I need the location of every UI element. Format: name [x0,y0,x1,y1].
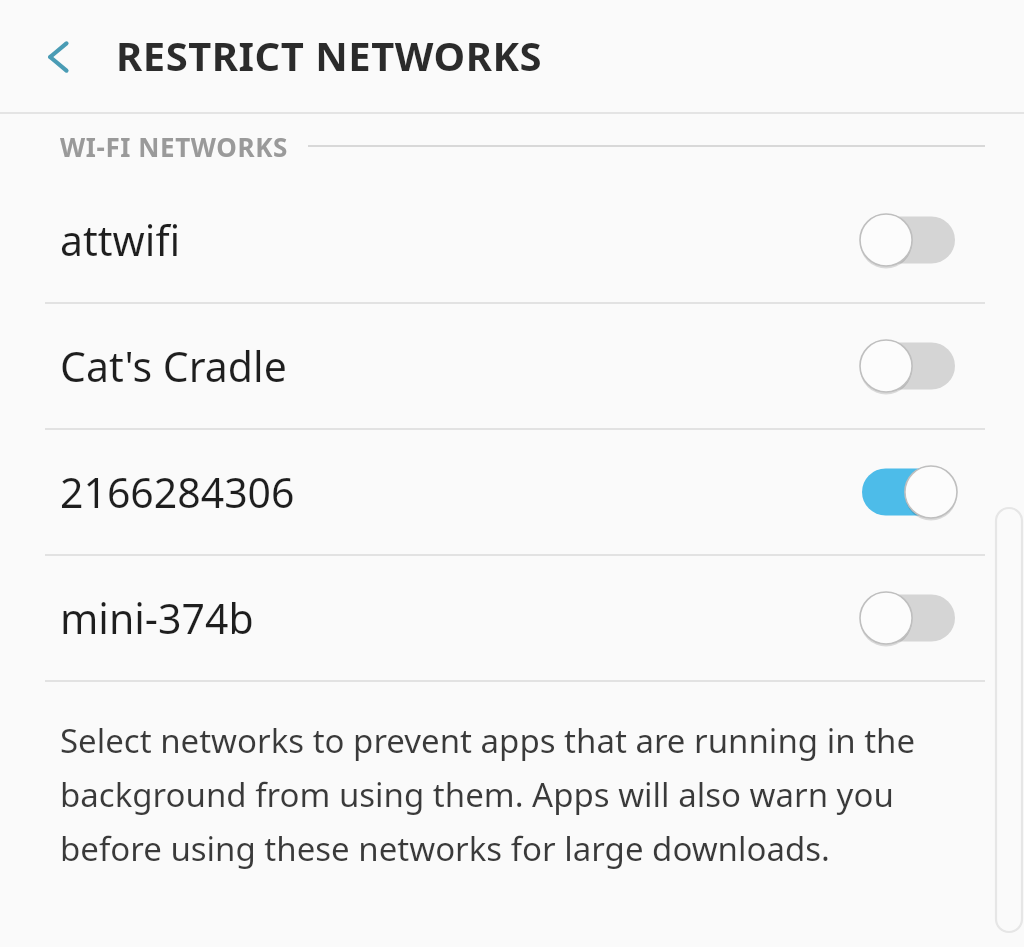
staticText: mini-374b [60,590,862,646]
staticText: Cat's Cradle [60,338,862,394]
button[interactable]: Cat's Cradle [0,304,1024,428]
staticText: RESTRICT NETWORKS [116,28,542,82]
button[interactable]: mini-374b [0,556,1024,680]
button[interactable]: Toggle off [862,590,958,646]
button[interactable]: 2166284306 [0,430,1024,554]
button[interactable]: Back [30,28,88,86]
button[interactable]: Toggle on [862,464,958,520]
staticText: attwifi [60,212,862,268]
button[interactable]: Toggle off [862,212,958,268]
staticText: WI-FI NETWORKS [60,129,288,164]
staticText: 2166284306 [60,464,862,520]
staticText: Select networks to prevent apps that are… [60,718,968,871]
button[interactable]: Toggle off [862,338,958,394]
button[interactable]: attwifi [0,178,1024,302]
